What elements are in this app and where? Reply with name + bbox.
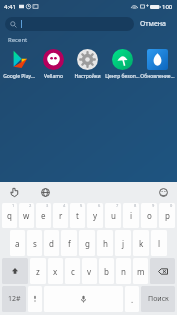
- staticText: Настройки: [74, 73, 101, 80]
- staticText: 8: [134, 203, 137, 208]
- button[interactable]: k: [133, 230, 149, 256]
- button[interactable]: Space: [44, 286, 123, 312]
- staticText: 5: [80, 203, 83, 208]
- button[interactable]: 3: [36, 203, 51, 228]
- staticText: z: [36, 266, 40, 277]
- button[interactable]: Vellamo: [36, 49, 70, 80]
- staticText: i: [130, 210, 133, 221]
- staticText: m: [137, 266, 145, 277]
- staticText: q: [7, 210, 12, 221]
- button[interactable]: 2: [19, 203, 34, 228]
- staticText: Центр безоп...: [105, 73, 140, 80]
- button[interactable]: Shift: [2, 258, 28, 284]
- button[interactable]: x: [48, 258, 63, 284]
- button[interactable]: d: [44, 230, 59, 256]
- staticText: k: [139, 238, 144, 249]
- staticText: t: [76, 210, 79, 221]
- staticText: 6: [98, 203, 101, 208]
- staticText: 4:41: [4, 3, 16, 11]
- staticText: 3: [46, 203, 49, 208]
- staticText: 7: [116, 203, 119, 208]
- button[interactable]: s: [27, 230, 42, 256]
- staticText: 2: [29, 203, 32, 208]
- button[interactable]: 4: [53, 203, 68, 228]
- button[interactable]: z: [30, 258, 46, 284]
- staticText: n: [121, 266, 126, 277]
- staticText: d: [49, 238, 54, 249]
- button[interactable]: h: [97, 230, 113, 256]
- button[interactable]: 12#: [2, 286, 26, 312]
- staticText: 12#: [8, 294, 21, 304]
- button[interactable]: a: [10, 230, 25, 256]
- button[interactable]: [5, 17, 134, 31]
- staticText: f: [68, 238, 71, 249]
- staticText: s: [33, 238, 37, 249]
- staticText: e: [41, 210, 46, 221]
- staticText: j: [122, 238, 125, 249]
- button[interactable]: j: [115, 230, 131, 256]
- button[interactable]: b: [99, 258, 114, 284]
- staticText: +: [146, 3, 149, 10]
- staticText: y: [93, 210, 98, 221]
- button[interactable]: Change keyboard language: [38, 185, 52, 199]
- staticText: p: [165, 210, 170, 221]
- staticText: w: [23, 210, 30, 221]
- staticText: 1: [12, 203, 15, 208]
- staticText: l: [158, 238, 161, 249]
- staticText: Обновление...: [140, 73, 175, 80]
- staticText: 100: [162, 3, 173, 11]
- staticText: Отмена: [140, 19, 167, 29]
- staticText: Recent: [8, 36, 28, 44]
- button[interactable]: Поиск: [141, 286, 175, 312]
- button[interactable]: n: [116, 258, 131, 284]
- button[interactable]: c: [65, 258, 80, 284]
- button[interactable]: Backspace: [150, 258, 175, 284]
- button[interactable]: 5: [70, 203, 85, 228]
- staticText: Vellamo: [44, 73, 63, 80]
- button[interactable]: Отмена: [134, 15, 173, 33]
- button[interactable]: 0: [159, 203, 175, 228]
- staticText: x: [53, 266, 58, 277]
- button[interactable]: v: [82, 258, 97, 284]
- button[interactable]: 8: [123, 203, 139, 228]
- staticText: b: [104, 266, 109, 277]
- staticText: .: [131, 294, 134, 305]
- button[interactable]: 7: [105, 203, 121, 228]
- staticText: c: [71, 266, 75, 277]
- button[interactable]: Emoji: [156, 185, 170, 199]
- staticText: h: [103, 238, 108, 249]
- button[interactable]: Handwriting input: [7, 185, 21, 199]
- button[interactable]: m: [133, 258, 148, 284]
- staticText: o: [147, 210, 152, 221]
- button[interactable]: Google Play...: [2, 49, 36, 80]
- button[interactable]: g: [79, 230, 95, 256]
- staticText: Поиск: [148, 294, 169, 304]
- button[interactable]: 1: [2, 203, 17, 228]
- staticText: 4: [63, 203, 66, 208]
- staticText: v: [87, 266, 92, 277]
- staticText: r: [59, 210, 63, 221]
- staticText: a: [15, 238, 20, 249]
- staticText: u: [111, 210, 116, 221]
- staticText: Google Play...: [3, 73, 35, 80]
- button[interactable]: 9: [141, 203, 157, 228]
- button[interactable]: .: [125, 286, 139, 312]
- button[interactable]: Обновление...: [140, 49, 175, 80]
- staticText: g: [85, 238, 90, 249]
- staticText: 0: [170, 203, 173, 208]
- button[interactable]: 6: [87, 203, 103, 228]
- button[interactable]: Keyboard settings: [28, 286, 42, 312]
- staticText: 9: [152, 203, 155, 208]
- button[interactable]: f: [61, 230, 77, 256]
- button[interactable]: Настройки: [70, 49, 105, 80]
- button[interactable]: Центр безоп...: [105, 49, 140, 80]
- button[interactable]: l: [151, 230, 167, 256]
